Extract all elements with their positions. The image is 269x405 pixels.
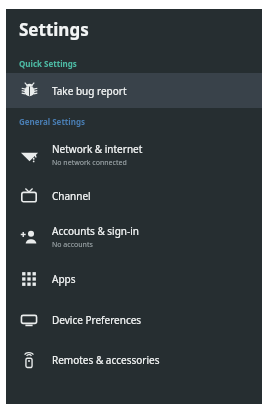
button[interactable]: Network and internet <box>6 134 262 176</box>
staticText: Accounts & sign-in <box>52 224 139 238</box>
staticText: No network connected <box>52 158 127 168</box>
staticText: No accounts <box>52 240 93 250</box>
other: Bug report <box>21 82 38 99</box>
staticText: Channel <box>52 189 91 203</box>
staticText: Take bug report <box>52 84 127 98</box>
button[interactable]: Apps <box>6 258 262 300</box>
button[interactable]: Accounts and sign-in <box>6 216 262 258</box>
button[interactable]: Bug report <box>6 73 262 108</box>
other: Device preferences <box>20 311 38 329</box>
other: Apps <box>21 271 37 287</box>
button[interactable]: Remotes and accessories <box>6 340 262 380</box>
other: Channel <box>20 187 38 205</box>
staticText: Apps <box>52 272 76 286</box>
other: Network and internet <box>20 146 39 165</box>
button[interactable]: Channel <box>6 176 262 216</box>
other: Accounts and sign-in <box>20 228 39 247</box>
staticText: Network & internet <box>52 142 143 156</box>
staticText: Quick Settings <box>19 58 77 69</box>
button[interactable]: Device preferences <box>6 300 262 340</box>
staticText: Device Preferences <box>52 313 142 327</box>
other: Remotes and accessories <box>20 351 38 369</box>
staticText: Remotes & accessories <box>52 353 160 367</box>
staticText: Settings <box>19 18 89 41</box>
staticText: General Settings <box>19 116 86 127</box>
